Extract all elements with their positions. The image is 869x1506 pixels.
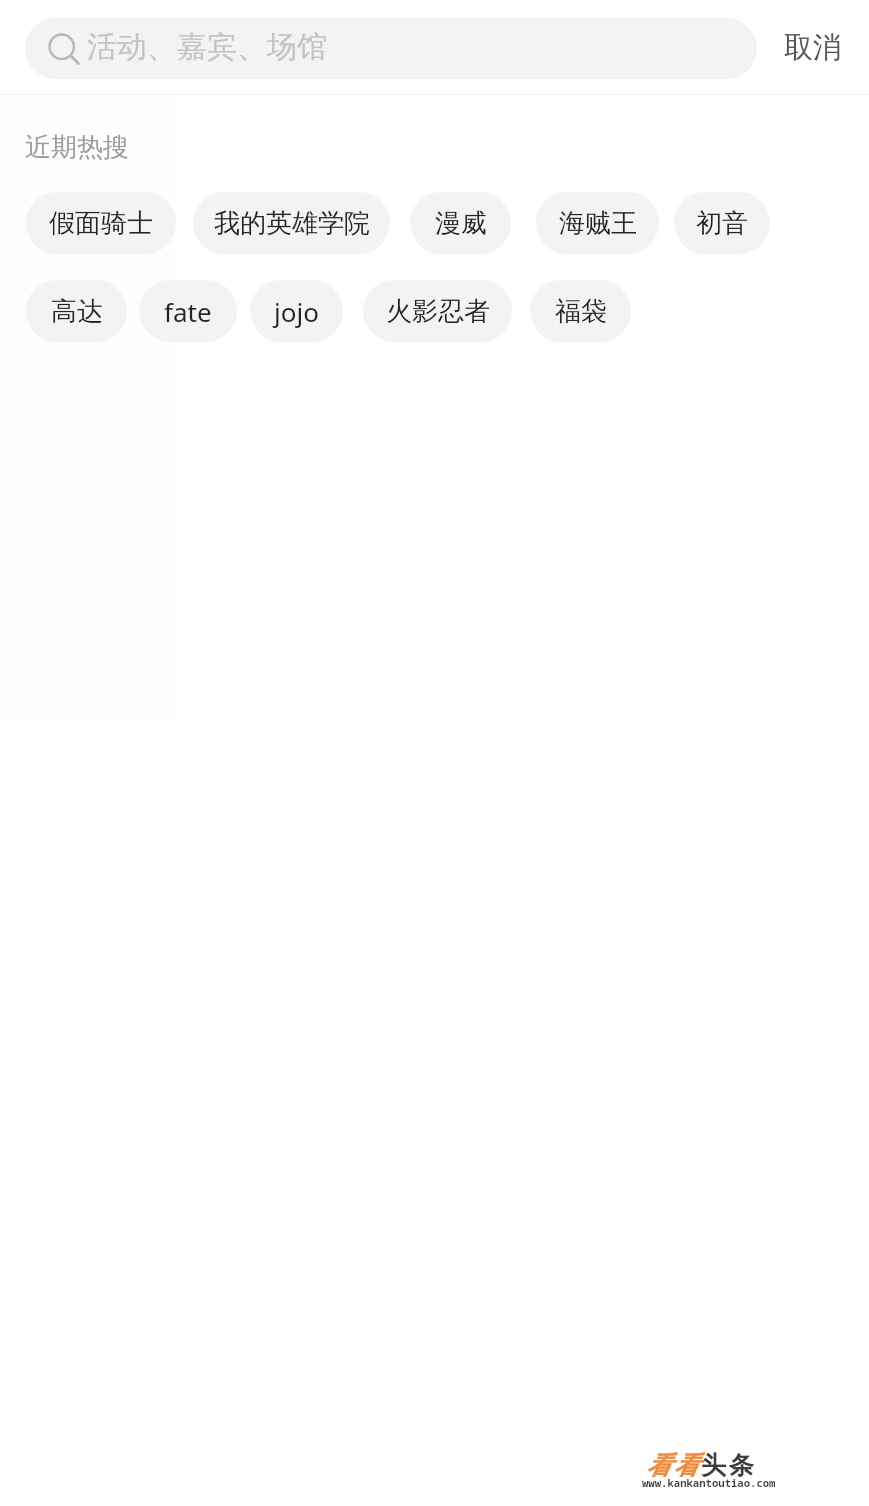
button[interactable]: 搜索	[25, 18, 757, 79]
staticText: 活动、嘉宾、场馆	[87, 28, 327, 66]
staticText: 火影忍者	[386, 295, 490, 328]
button[interactable]: 海贼王	[536, 192, 659, 254]
button[interactable]: fate	[139, 280, 237, 342]
staticText: 我的英雄学院	[214, 207, 370, 240]
staticText: 取消	[784, 29, 842, 66]
staticText: fate	[164, 294, 212, 329]
button[interactable]: 初音	[674, 192, 770, 254]
button[interactable]: 漫威	[410, 192, 511, 254]
staticText: 假面骑士	[49, 207, 153, 240]
staticText: 海贼王	[559, 207, 637, 240]
staticText: 高达	[51, 295, 103, 328]
other: 搜索	[43, 31, 79, 67]
staticText: 看看	[645, 1450, 700, 1481]
button[interactable]: 火影忍者	[363, 280, 512, 342]
button[interactable]: 取消	[757, 18, 869, 79]
button[interactable]: jojo	[250, 280, 343, 342]
staticText: 头条	[700, 1450, 755, 1481]
button[interactable]: 假面骑士	[26, 192, 176, 254]
staticText: www.kankantoutiao.com	[642, 1476, 776, 1490]
staticText: jojo	[274, 294, 319, 329]
staticText: 福袋	[555, 295, 607, 328]
button[interactable]: 高达	[26, 280, 127, 342]
staticText: 初音	[696, 207, 748, 240]
staticText: 近期热搜	[25, 131, 129, 164]
button[interactable]: 我的英雄学院	[193, 192, 390, 254]
staticText: 漫威	[435, 207, 487, 240]
button[interactable]: 福袋	[530, 280, 631, 342]
